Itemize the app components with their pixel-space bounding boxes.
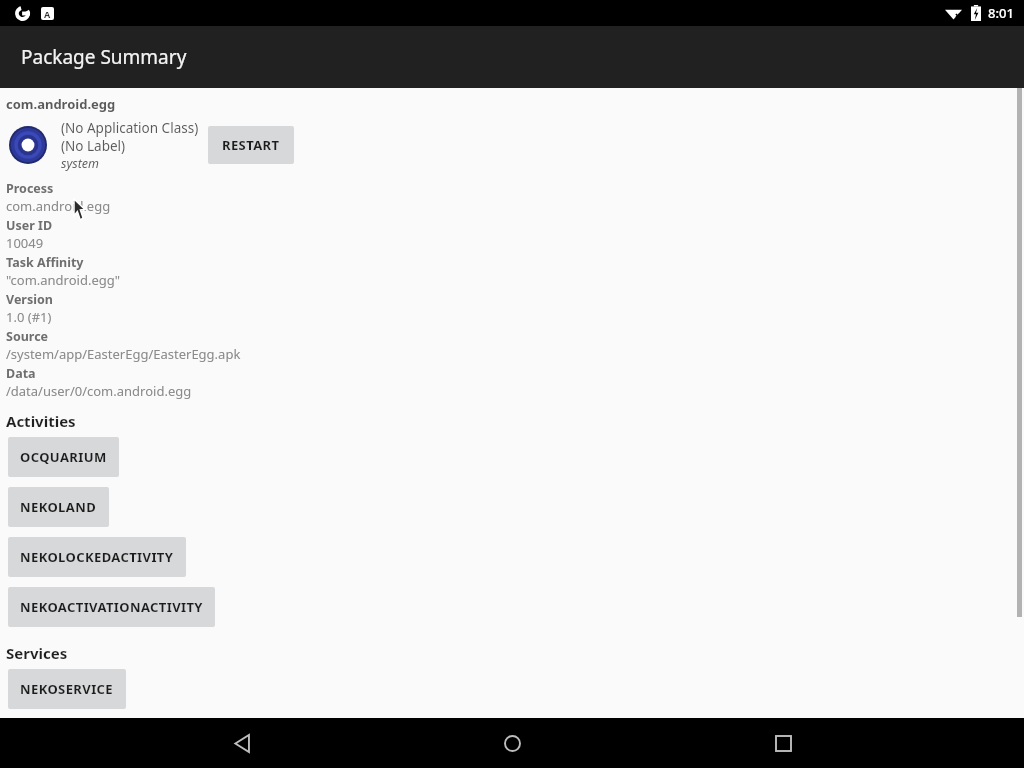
staticText: system xyxy=(61,155,99,172)
staticText: NEKOLOCKEDACTIVITY xyxy=(20,548,174,566)
button[interactable]: OCQUARIUM xyxy=(8,437,119,477)
staticText: Process xyxy=(6,180,54,197)
staticText: RESTART xyxy=(222,136,280,154)
button[interactable]: NEKOLAND xyxy=(8,487,109,527)
staticText: Activities xyxy=(6,411,76,431)
button[interactable]: NEKOSERVICE xyxy=(8,669,126,709)
button[interactable]: NEKOLOCKEDACTIVITY xyxy=(8,537,186,577)
staticText: Source xyxy=(6,328,49,345)
staticText: 10049 xyxy=(6,234,44,252)
staticText: "com.android.egg" xyxy=(6,271,121,289)
staticText: OCQUARIUM xyxy=(20,448,107,466)
staticText: 1.0 (#1) xyxy=(6,308,52,326)
staticText: NEKOLAND xyxy=(20,498,97,516)
staticText: User ID xyxy=(6,217,53,234)
staticText: Version xyxy=(6,291,53,308)
staticText: /system/app/EasterEgg/EasterEgg.apk xyxy=(6,345,241,363)
button[interactable]: Back xyxy=(213,718,271,768)
staticText: Task Affinity xyxy=(6,254,84,271)
button[interactable]: Home xyxy=(483,718,541,768)
button[interactable]: Recent apps xyxy=(754,718,812,768)
button[interactable]: NEKOACTIVATIONACTIVITY xyxy=(8,587,215,627)
staticText: NEKOACTIVATIONACTIVITY xyxy=(20,598,203,616)
staticText: (No Label) xyxy=(61,137,126,155)
staticText: com.android.egg xyxy=(6,95,116,113)
button[interactable]: RESTART xyxy=(208,126,294,164)
staticText: 8:01 xyxy=(988,4,1014,22)
staticText: NEKOSERVICE xyxy=(20,680,114,698)
staticText: Data xyxy=(6,365,36,382)
staticText: A xyxy=(44,8,51,20)
staticText: /data/user/0/com.android.egg xyxy=(6,382,192,400)
staticText: com.android.egg xyxy=(6,197,111,215)
staticText: Services xyxy=(6,643,68,663)
staticText: Package Summary xyxy=(21,44,187,70)
staticText: (No Application Class) xyxy=(61,119,199,137)
